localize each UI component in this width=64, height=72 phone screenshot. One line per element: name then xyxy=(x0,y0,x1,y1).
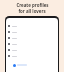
staticText: for all lovers xyxy=(18,8,46,14)
button[interactable] xyxy=(6,62,58,68)
button[interactable] xyxy=(6,35,58,41)
button[interactable] xyxy=(6,53,58,59)
button[interactable] xyxy=(6,23,58,29)
button[interactable] xyxy=(6,41,58,47)
staticText: Create profiles xyxy=(16,2,49,8)
button[interactable] xyxy=(6,47,58,53)
button[interactable] xyxy=(6,29,58,35)
